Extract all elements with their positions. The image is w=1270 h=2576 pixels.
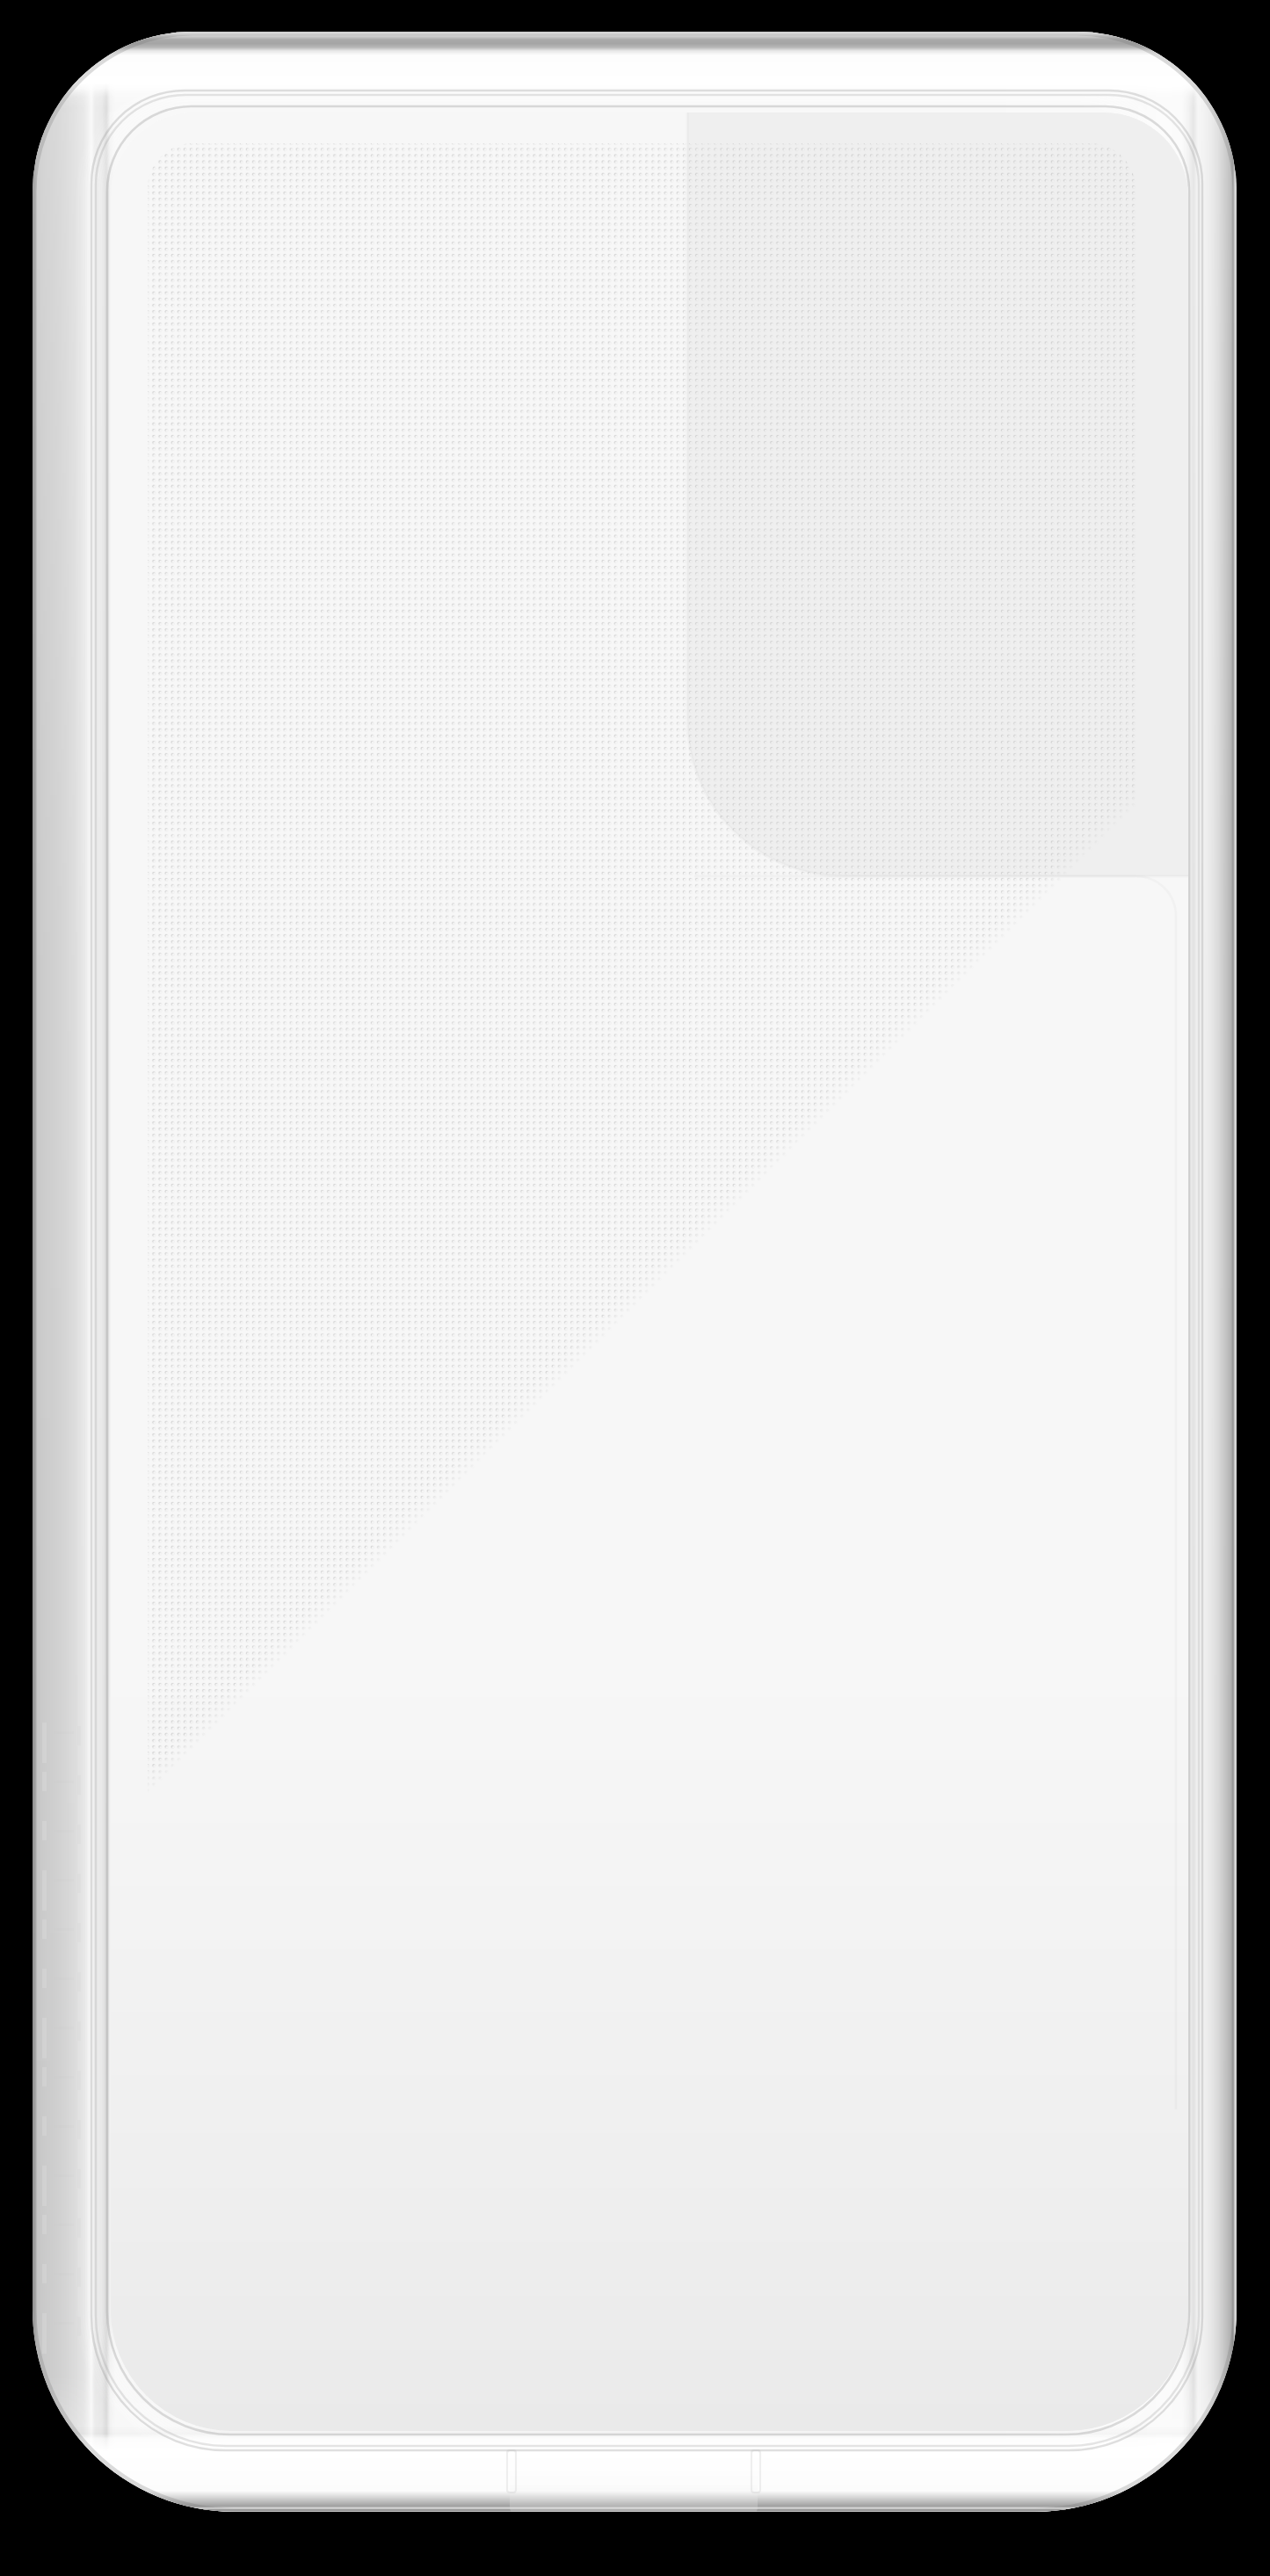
button[interactable]: Clear protective phone case bbox=[0, 0, 1270, 2576]
